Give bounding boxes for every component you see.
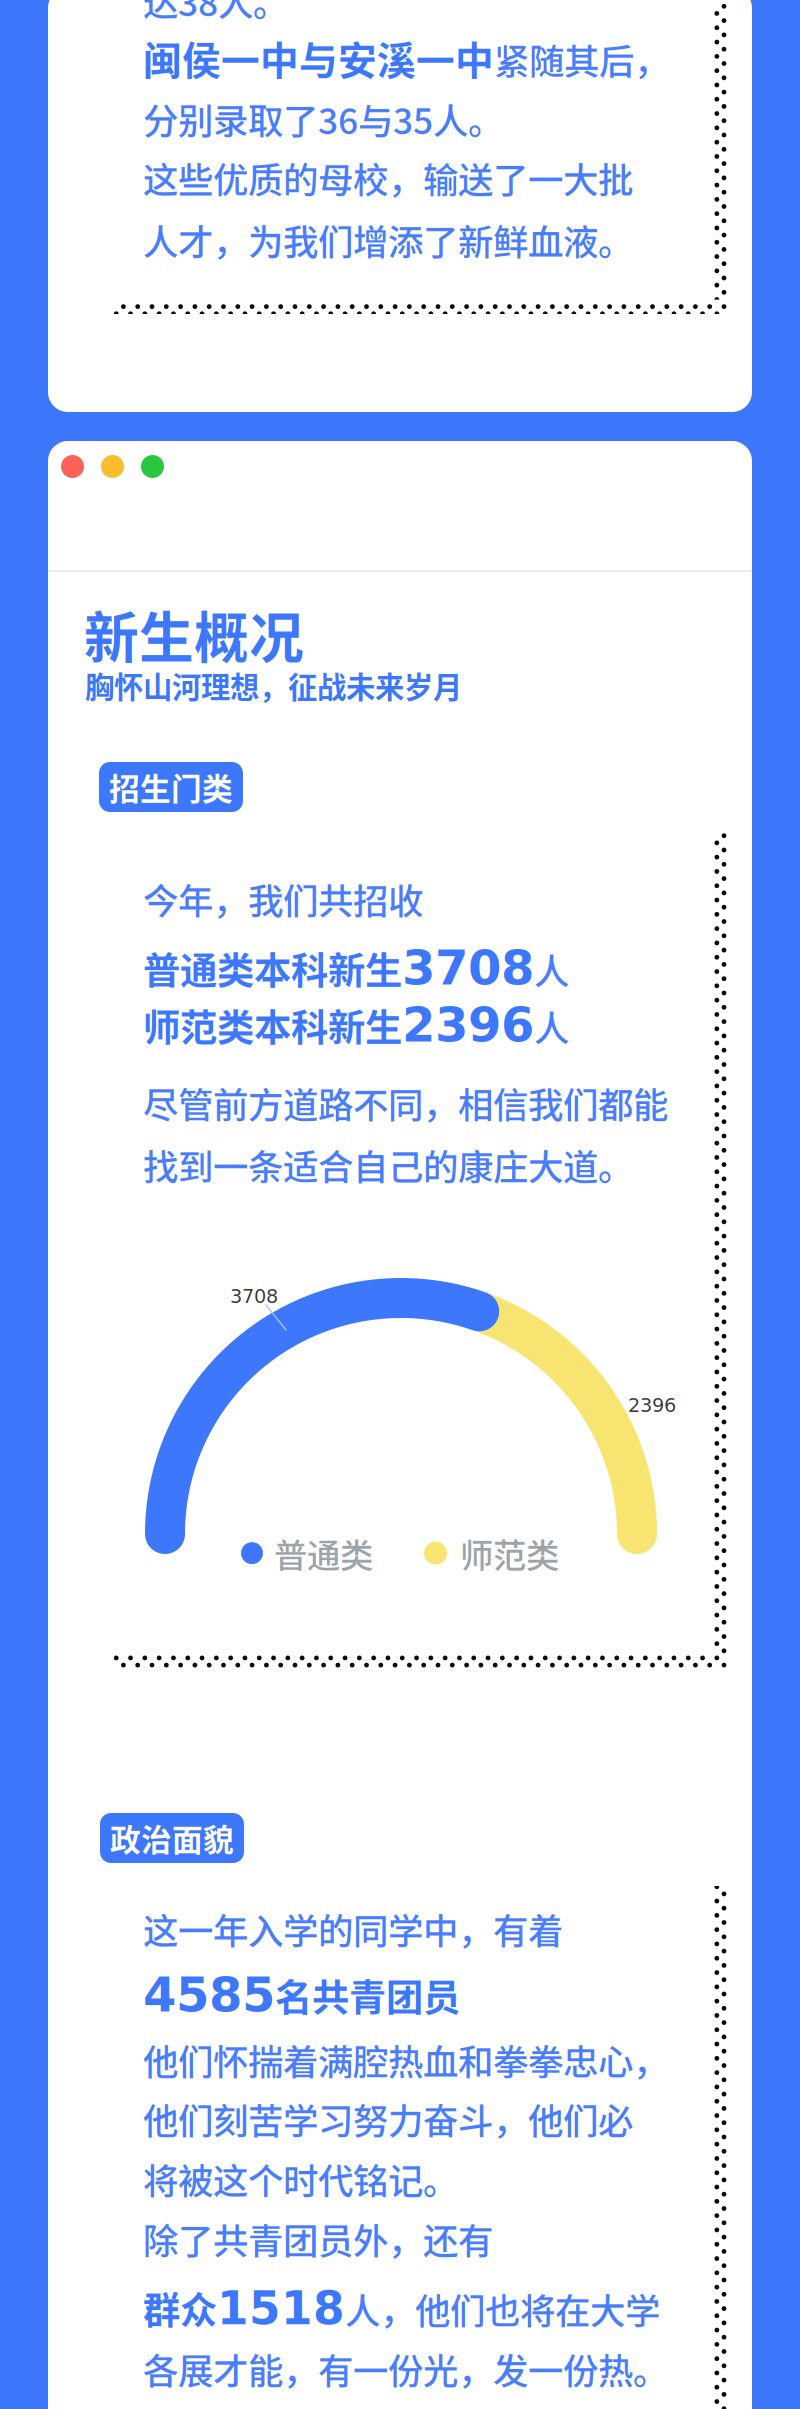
staticText: 各展才能，有一份光，发一份热。 [143,2343,668,2394]
staticText: 2396 [402,997,534,1053]
staticText: 人 [534,943,569,995]
staticText: 胸怀山河理想，征战未来岁月 [85,664,462,706]
staticText: 他们刻苦学习努力奋斗，他们必 [143,2093,633,2144]
staticText: 人，他们也将在大学 [345,2283,660,2335]
staticText: 普通类本科新生 [143,941,402,995]
staticText: 这一年入学的同学中，有着 [143,1903,563,1954]
staticText: 4585 [143,1967,275,2023]
staticText: 2396 [628,1394,676,1416]
staticText: 紧随其后， [494,34,669,85]
staticText: 普通类 [274,1529,373,1577]
staticText: 闽侯一中与安溪一中 [143,30,494,86]
staticText: 3708 [402,940,534,996]
button[interactable]: 政治面貌 [100,1813,244,1863]
staticText: 新生概况 [84,594,304,673]
staticText: 群众 [143,2281,217,2335]
staticText: 今年，我们共招收 [143,873,423,924]
staticText: 他们怀揣着满腔热血和拳拳忠心， [143,2034,668,2085]
staticText: 师范类 [460,1529,559,1577]
staticText: 招生门类 [109,765,233,809]
staticText: 找到一条适合自己的康庄大道。 [143,1139,633,1190]
staticText: 这些优质的母校，输送了一大批 [143,152,633,203]
staticText: 将被这个时代铭记。 [143,2153,458,2204]
staticText: 师范类本科新生 [143,998,402,1052]
staticText: 名共青团员 [275,1968,460,2022]
staticText: 3708 [230,1285,278,1307]
staticText: 1518 [217,2282,345,2335]
staticText: 人 [534,1000,569,1052]
staticText: 政治面貌 [110,1816,234,1860]
staticText: 达38人。 [143,0,288,26]
button[interactable]: 招生门类 [99,762,243,812]
staticText: 尽管前方道路不同，相信我们都能 [143,1077,668,1128]
staticText: 除了共青团员外，还有 [143,2213,493,2264]
staticText: 人才，为我们增添了新鲜血液。 [143,214,633,265]
staticText: 分别录取了36与35人。 [143,93,503,144]
